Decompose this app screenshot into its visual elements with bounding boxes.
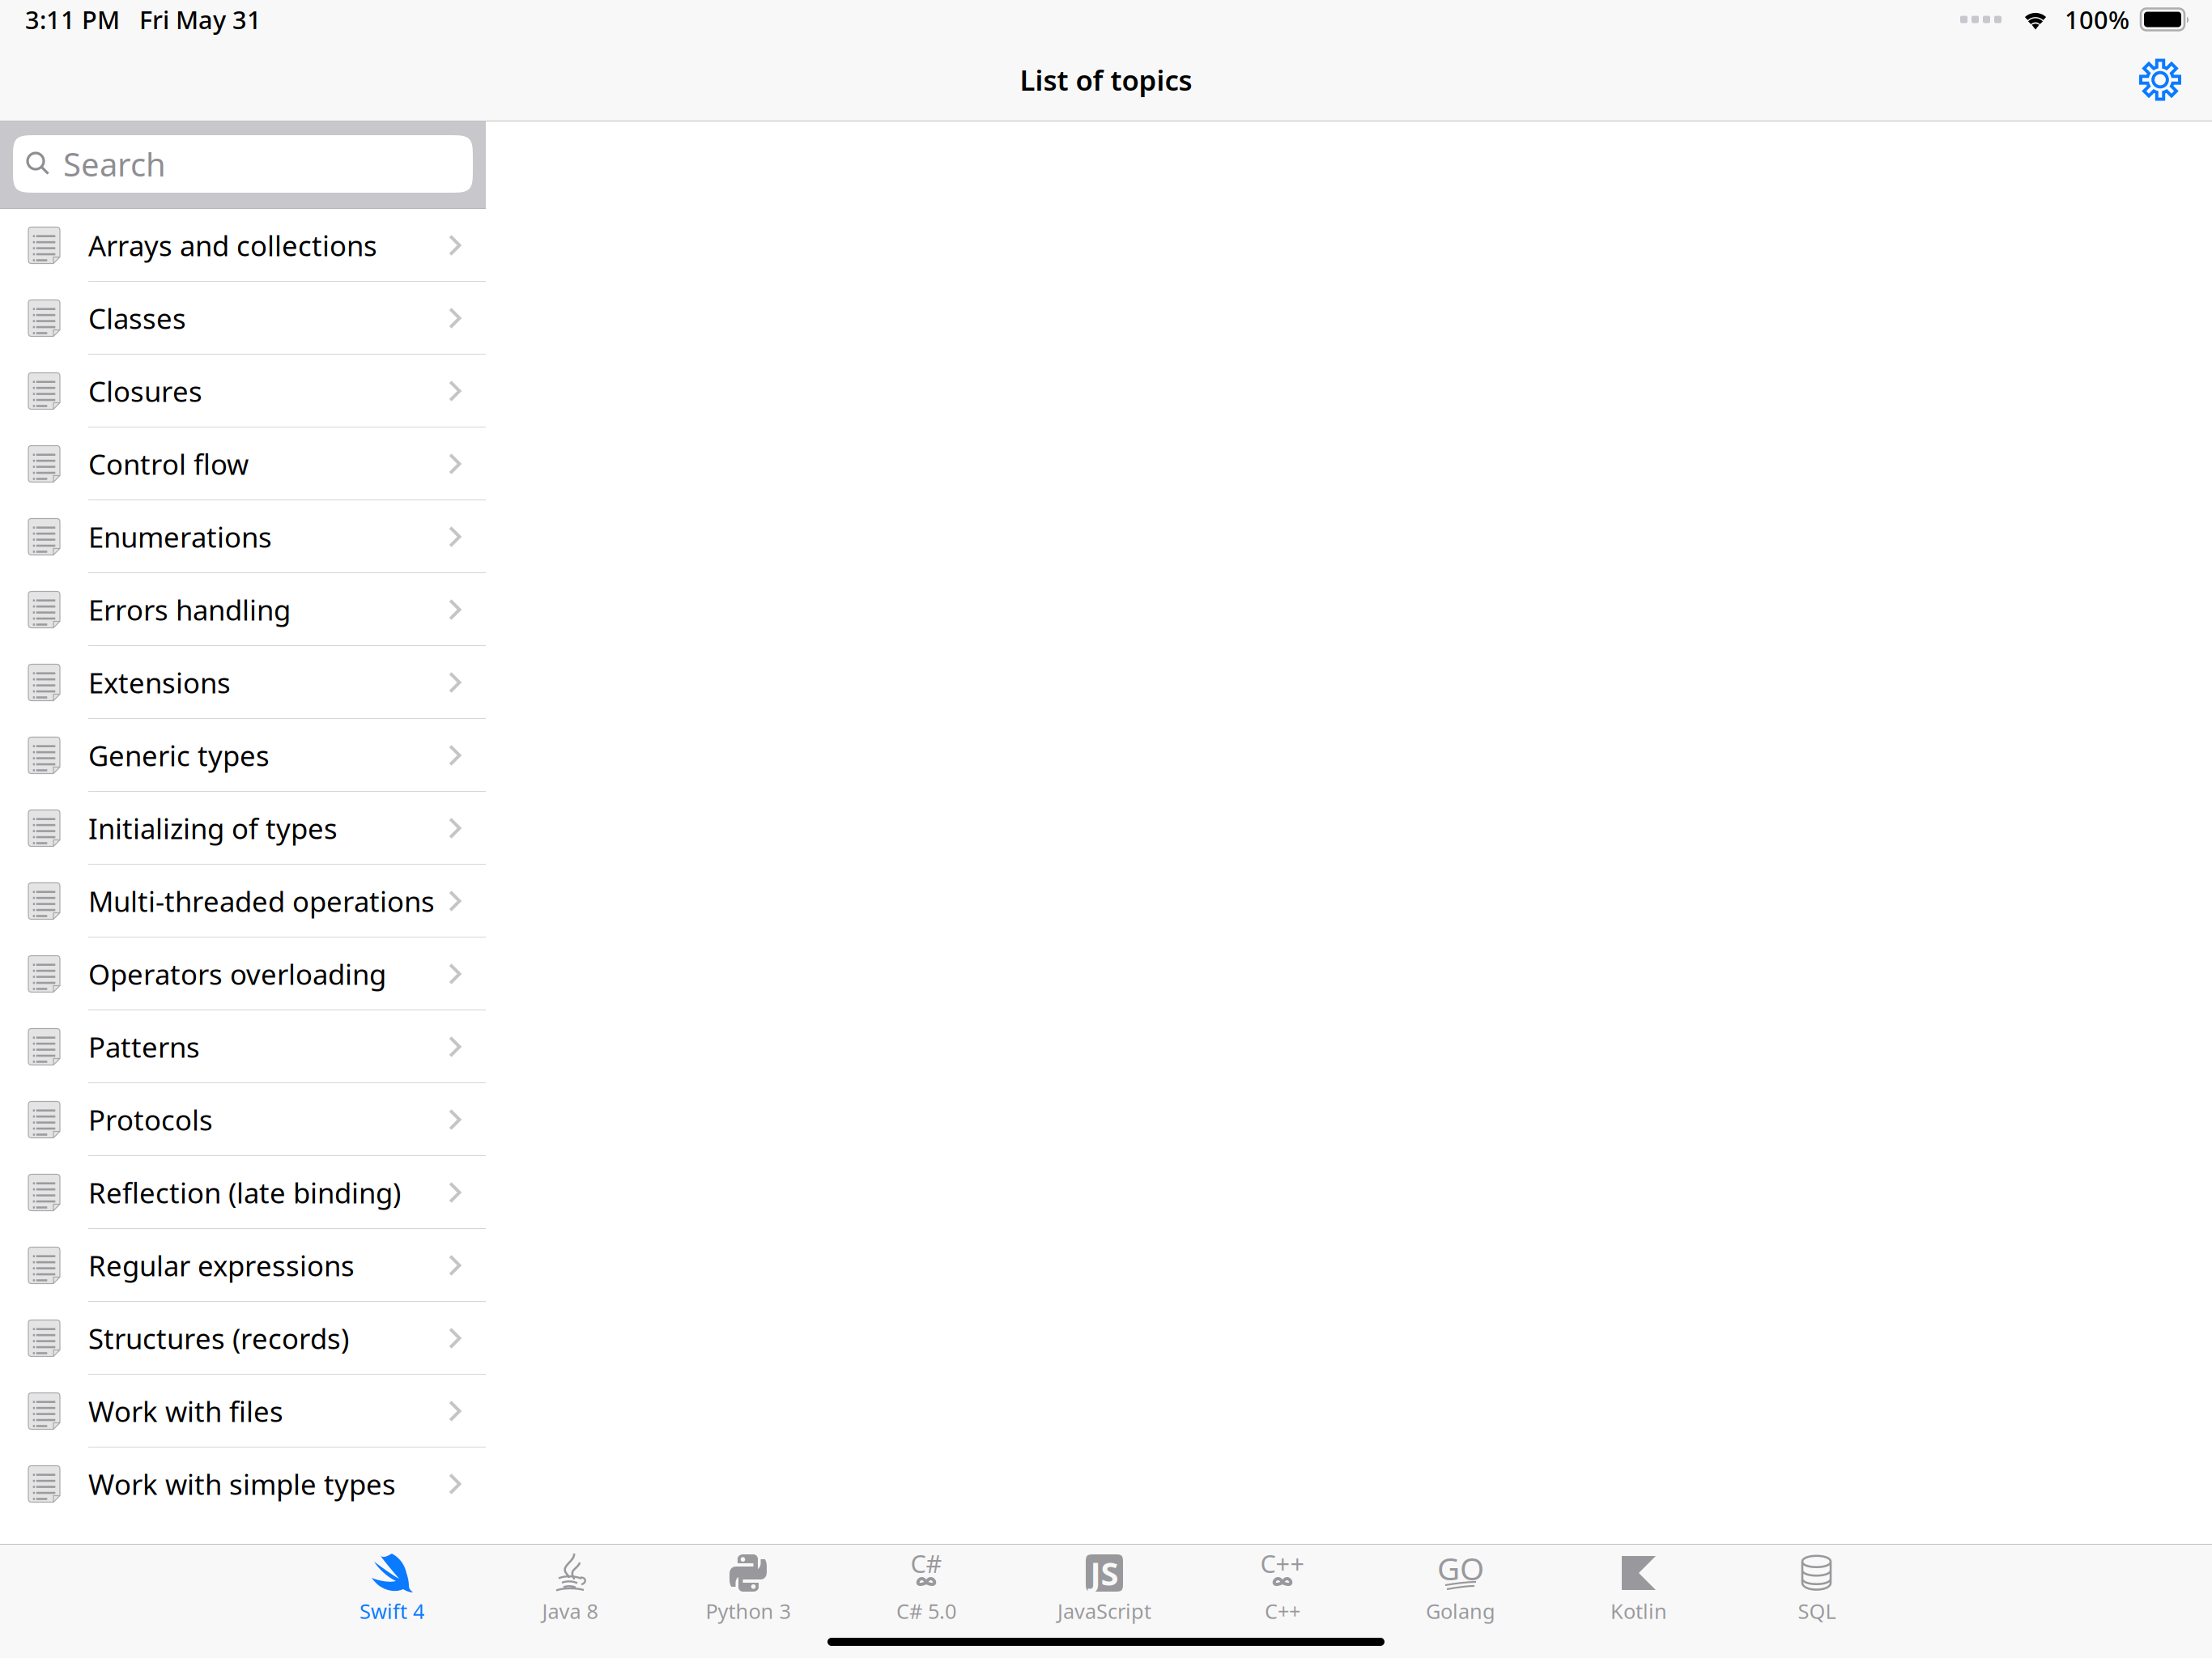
button[interactable]: Settings bbox=[2125, 44, 2196, 115]
staticText: GO bbox=[1437, 1547, 1484, 1589]
staticText: Operators overloading bbox=[88, 955, 386, 993]
button[interactable]: Closures bbox=[0, 355, 486, 427]
button[interactable]: Extensions bbox=[0, 646, 486, 719]
staticText: SQL bbox=[1798, 1597, 1836, 1624]
button[interactable]: C# bbox=[837, 1545, 1015, 1658]
staticText: C# 5.0 bbox=[896, 1597, 956, 1624]
staticText: Classes bbox=[88, 300, 186, 337]
button[interactable]: Protocols bbox=[0, 1083, 486, 1156]
button[interactable]: Swift 4 bbox=[303, 1545, 481, 1658]
button[interactable]: SQL bbox=[1728, 1545, 1906, 1658]
staticText: C++ bbox=[1265, 1597, 1300, 1624]
button[interactable]: Enumerations bbox=[0, 500, 486, 573]
button[interactable]: Kotlin bbox=[1550, 1545, 1728, 1658]
staticText: Structures (records) bbox=[88, 1320, 349, 1357]
button[interactable]: GO bbox=[1372, 1545, 1550, 1658]
staticText: 3:11 PM bbox=[25, 3, 120, 36]
staticText: Multi-threaded operations bbox=[88, 882, 435, 920]
staticText: JS bbox=[1090, 1551, 1119, 1594]
button[interactable]: Java 8 bbox=[481, 1545, 659, 1658]
button[interactable]: Generic types bbox=[0, 719, 486, 792]
button[interactable]: Patterns bbox=[0, 1010, 486, 1083]
staticText: Initializing of types bbox=[88, 810, 338, 847]
button[interactable]: JS bbox=[1015, 1545, 1193, 1658]
button[interactable]: Control flow bbox=[0, 427, 486, 500]
staticText: Golang bbox=[1426, 1597, 1495, 1624]
staticText: Errors handling bbox=[88, 591, 291, 628]
staticText: Fri May 31 bbox=[139, 3, 262, 36]
staticText: C# bbox=[910, 1547, 942, 1580]
staticText: Extensions bbox=[88, 664, 231, 701]
staticText: Kotlin bbox=[1610, 1597, 1667, 1624]
button[interactable]: Arrays and collections bbox=[0, 209, 486, 282]
button[interactable]: Operators overloading bbox=[0, 937, 486, 1010]
button[interactable]: C++ bbox=[1193, 1545, 1372, 1658]
staticText: Protocols bbox=[88, 1101, 213, 1138]
staticText: Control flow bbox=[88, 445, 249, 483]
staticText: Work with simple types bbox=[88, 1465, 396, 1503]
staticText: Java 8 bbox=[542, 1597, 598, 1624]
staticText: Generic types bbox=[88, 737, 270, 774]
button[interactable]: Work with files bbox=[0, 1375, 486, 1448]
button[interactable]: Search bbox=[13, 135, 473, 193]
staticText: Regular expressions bbox=[88, 1247, 355, 1284]
button[interactable]: Work with simple types bbox=[0, 1448, 486, 1520]
staticText: Swift 4 bbox=[359, 1597, 424, 1624]
staticText: List of topics bbox=[1020, 61, 1192, 98]
staticText: Closures bbox=[88, 372, 202, 410]
button[interactable]: Initializing of types bbox=[0, 792, 486, 865]
staticText: Patterns bbox=[88, 1028, 200, 1065]
staticText: 100% bbox=[2065, 3, 2129, 36]
button[interactable]: Multi-threaded operations bbox=[0, 865, 486, 937]
staticText: Enumerations bbox=[88, 518, 272, 555]
staticText: Python 3 bbox=[706, 1597, 791, 1624]
button[interactable]: Regular expressions bbox=[0, 1229, 486, 1302]
button[interactable]: Classes bbox=[0, 282, 486, 355]
button[interactable]: Python 3 bbox=[659, 1545, 837, 1658]
button[interactable]: Structures (records) bbox=[0, 1302, 486, 1375]
button[interactable]: Reflection (late binding) bbox=[0, 1156, 486, 1229]
staticText: Work with files bbox=[88, 1392, 283, 1430]
staticText: C++ bbox=[1260, 1547, 1305, 1580]
staticText: Search bbox=[63, 142, 166, 185]
staticText: Reflection (late binding) bbox=[88, 1174, 401, 1211]
staticText: JavaScript bbox=[1057, 1597, 1151, 1624]
button[interactable]: Errors handling bbox=[0, 573, 486, 646]
staticText: Arrays and collections bbox=[88, 227, 377, 264]
